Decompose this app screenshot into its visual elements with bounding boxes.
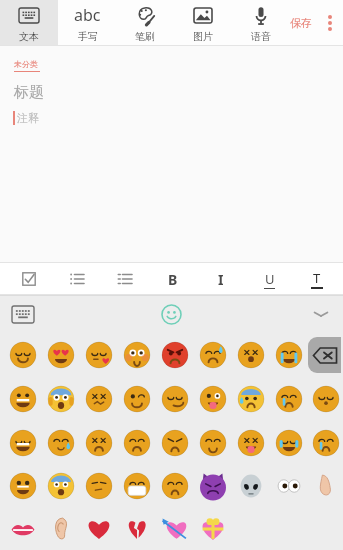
button[interactable]: Emoji PERSEVERE	[80, 421, 118, 464]
button[interactable]: Emoji DIZZY_X	[232, 333, 270, 377]
button[interactable]: Emoji BROKEN	[118, 507, 156, 550]
button[interactable]: Emoji LIPS	[4, 507, 42, 550]
button[interactable]: Emoji ALIEN	[232, 464, 270, 507]
button[interactable]: Bold	[152, 263, 194, 295]
button[interactable]: Bulleted list	[56, 263, 98, 295]
staticText: B	[168, 270, 178, 289]
button[interactable]: Emoji GRIN	[4, 421, 42, 464]
button[interactable]: Italic	[200, 263, 242, 295]
button[interactable]: Emoji JOY	[270, 421, 308, 464]
staticText: U	[265, 270, 275, 288]
button[interactable]: Emoji ANXIOUS_SWEAT	[232, 377, 270, 421]
button[interactable]: Emoji GRIMACE	[4, 377, 42, 421]
staticText: abc	[74, 4, 101, 26]
button[interactable]: Emoji SMILE_EYES	[4, 333, 42, 377]
button[interactable]: Emoji SLEEPY	[42, 421, 80, 464]
button[interactable]: Emoji WORRIED	[308, 421, 343, 464]
button[interactable]: Emoji SCREAM	[42, 377, 80, 421]
button[interactable]: Hide keyboard	[313, 309, 329, 319]
button[interactable]: Emoji WINK_TONGUE	[194, 377, 232, 421]
staticText: 图片	[193, 30, 213, 43]
button[interactable]: Emoji FEARFUL	[42, 464, 80, 507]
button[interactable]: Numbered list	[104, 263, 146, 295]
button[interactable]: Emoji DEVIL	[194, 464, 232, 507]
button[interactable]: Underline	[248, 263, 290, 295]
button[interactable]: Emoji UNAMUSED	[80, 464, 118, 507]
button[interactable]: 语音	[232, 0, 290, 46]
button[interactable]: Emoji HEART_EYES	[42, 333, 80, 377]
button[interactable]: Emoji	[161, 304, 182, 325]
staticText: 保存	[290, 16, 312, 30]
button[interactable]: Emoji TONGUE_SQUINT	[232, 421, 270, 464]
button[interactable]: Emoji CONFOUNDED	[80, 377, 118, 421]
staticText: 标题	[14, 83, 44, 102]
staticText: 注释	[17, 111, 39, 125]
button[interactable]: Emoji EAR	[42, 507, 80, 550]
button[interactable]: Emoji MASK	[118, 464, 156, 507]
button[interactable]: Emoji ANGRY_RED	[156, 333, 194, 377]
button[interactable]: Emoji NOSE	[308, 464, 343, 507]
button[interactable]: More options	[316, 0, 343, 46]
button[interactable]: Emoji PENSIVE	[118, 421, 156, 464]
button[interactable]: abc	[58, 0, 116, 46]
staticText: 未分类	[14, 59, 38, 69]
button[interactable]: Emoji SWEAT_FROWN	[194, 333, 232, 377]
button[interactable]: Switch to keyboard	[12, 306, 34, 323]
button[interactable]: Emoji KISS_HEART	[80, 333, 118, 377]
button[interactable]: Emoji CRY	[270, 377, 308, 421]
button[interactable]: Emoji RELIEVED	[194, 421, 232, 464]
button[interactable]: 笔刷	[116, 0, 174, 46]
button[interactable]: Emoji WINK	[118, 377, 156, 421]
button[interactable]: Emoji GIFT_HEART	[194, 507, 232, 550]
button[interactable]: Checklist	[8, 263, 50, 295]
button[interactable]: 图片	[174, 0, 232, 46]
staticText: 文本	[19, 30, 39, 43]
button[interactable]: Emoji SMIRK	[156, 377, 194, 421]
button[interactable]: Backspace	[308, 337, 341, 373]
staticText: 语音	[251, 30, 271, 43]
button[interactable]: Emoji DISAPPOINTED	[156, 464, 194, 507]
button[interactable]: Emoji EYES	[270, 464, 308, 507]
button[interactable]: Emoji TIRED	[156, 421, 194, 464]
staticText: 笔刷	[135, 30, 155, 43]
button[interactable]: Emoji FLUSHED	[118, 333, 156, 377]
button[interactable]: Emoji SOB	[270, 333, 308, 377]
staticText: 手写	[78, 30, 98, 43]
button[interactable]: Emoji GRIN_BIG	[4, 464, 42, 507]
button[interactable]: 保存	[290, 16, 312, 30]
staticText: T	[313, 269, 321, 287]
button[interactable]: Emoji KISSING_CLOSED	[308, 377, 343, 421]
button[interactable]: Text color	[296, 263, 338, 295]
staticText: I	[218, 270, 224, 289]
button[interactable]: 文本	[0, 0, 58, 46]
button[interactable]: Emoji HEART	[80, 507, 118, 550]
button[interactable]: Emoji ARROW_HEART	[156, 507, 194, 550]
